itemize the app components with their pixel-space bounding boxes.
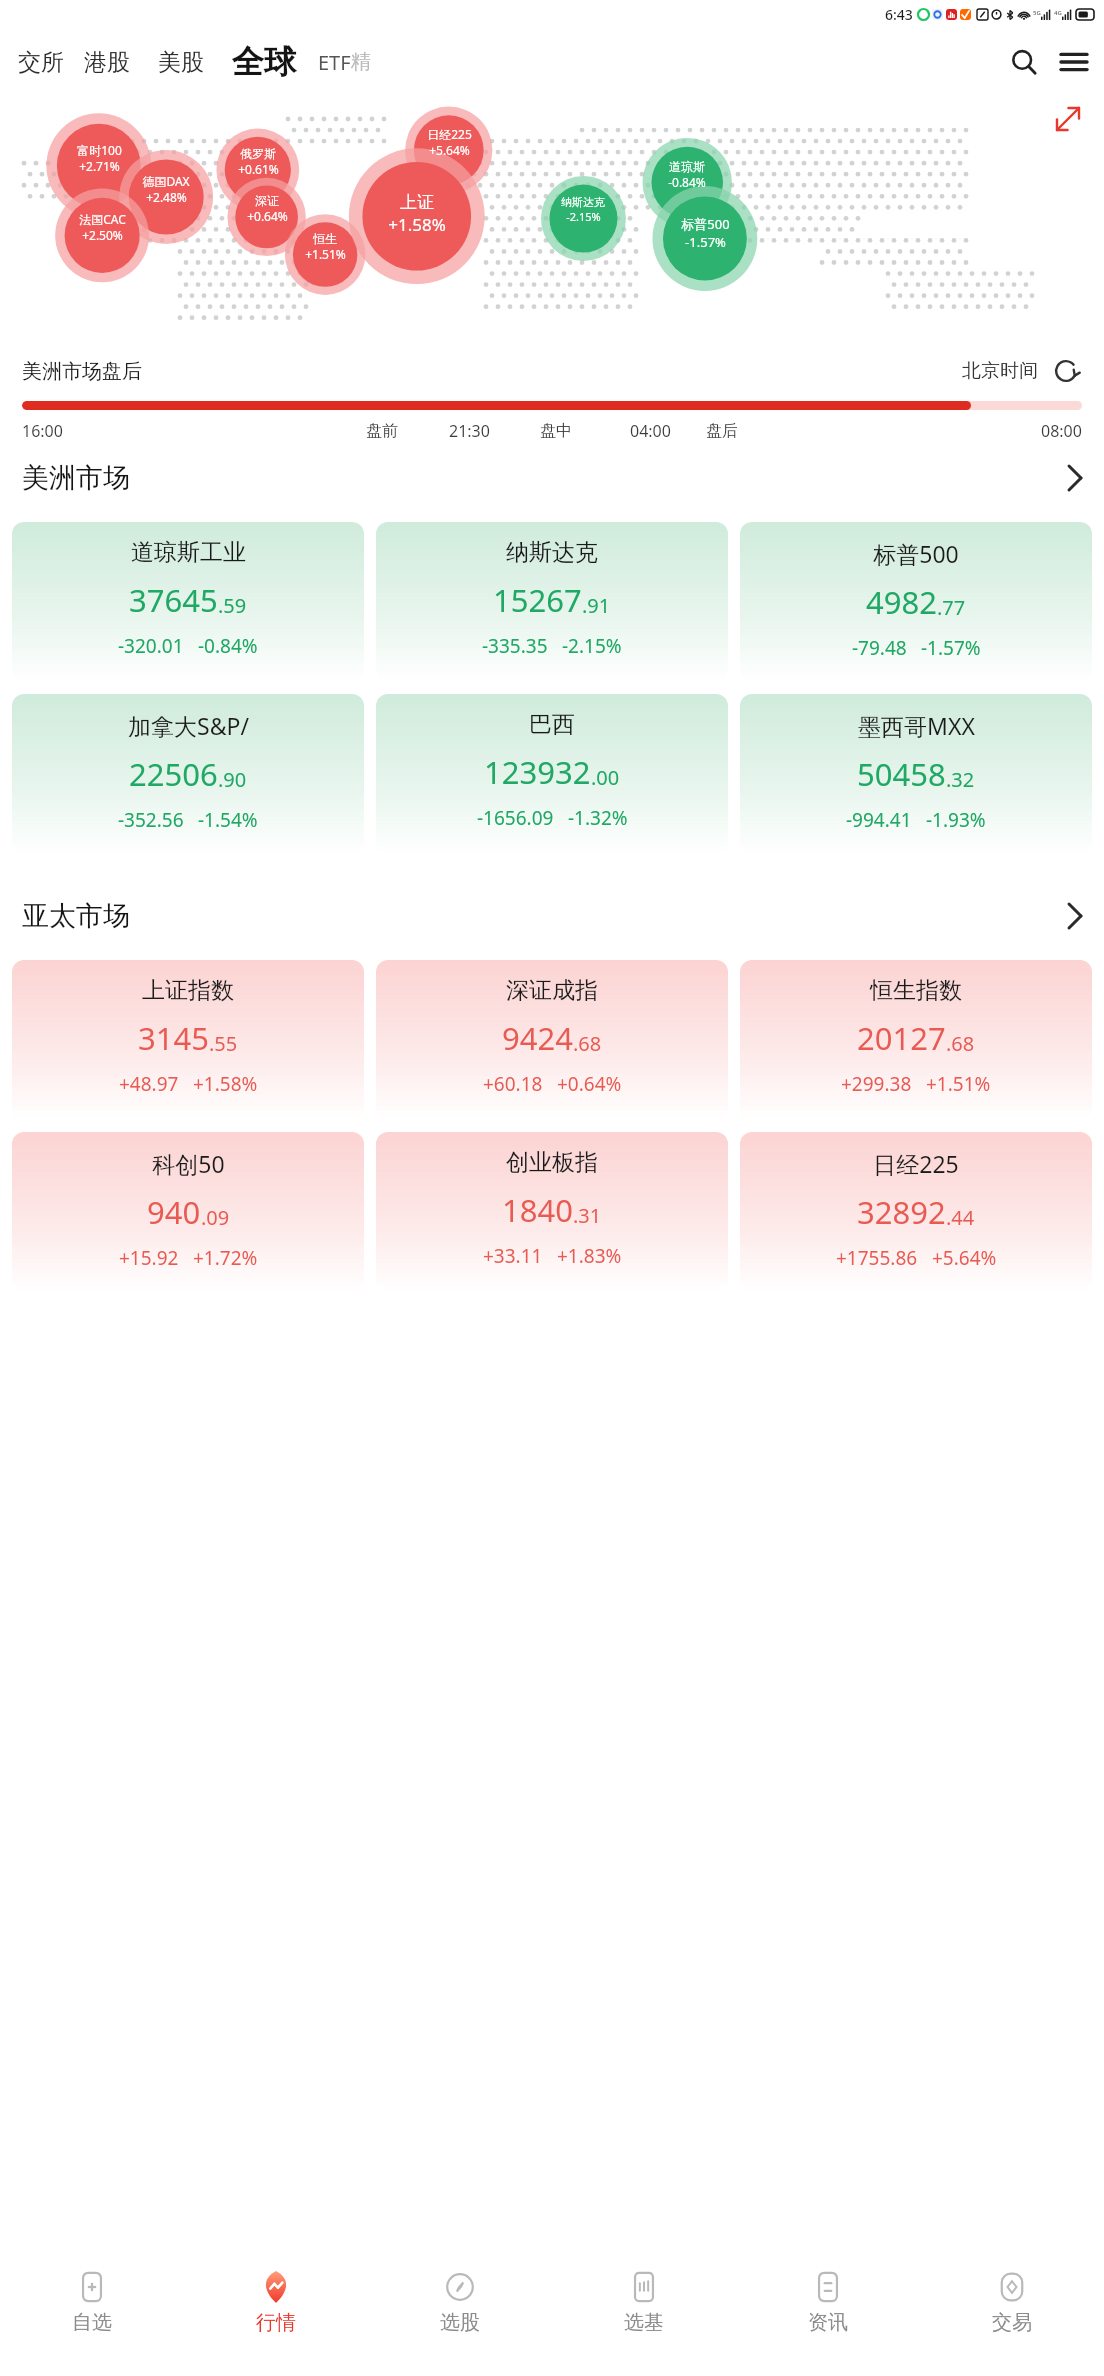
button[interactable]: 交易 xyxy=(920,2268,1104,2376)
staticText: 巴西 xyxy=(529,710,575,739)
button[interactable]: 纳斯达克 xyxy=(376,522,728,682)
button[interactable]: 选基 xyxy=(552,2268,736,2376)
button[interactable]: 俄罗斯 xyxy=(198,146,318,177)
staticText: 16:00 xyxy=(22,420,63,442)
button[interactable]: 恒生指数 xyxy=(740,960,1092,1120)
staticText: -1.57% xyxy=(921,635,981,661)
staticText: 4G xyxy=(1054,9,1062,17)
button[interactable]: 道琼斯 xyxy=(627,159,747,190)
staticText: -320.01 xyxy=(118,633,184,659)
button[interactable]: 标普500 xyxy=(645,215,765,251)
button[interactable]: 亚太市场 xyxy=(0,880,1104,952)
staticText: 37645 xyxy=(129,579,218,621)
button[interactable]: 深证 xyxy=(207,193,327,224)
staticText: +1.58% xyxy=(193,1071,258,1097)
staticText: 资讯 xyxy=(808,2310,848,2335)
staticText: 自选 xyxy=(72,2310,112,2335)
button[interactable]: 创业板指 xyxy=(376,1132,728,1292)
staticText: -1.54% xyxy=(198,807,258,833)
button[interactable]: Refresh xyxy=(1050,355,1082,387)
staticText: -1.57% xyxy=(685,233,726,251)
staticText: 道琼斯 xyxy=(669,159,705,174)
staticText: 5G xyxy=(1033,9,1041,17)
staticText: 日经225 xyxy=(873,1148,959,1179)
staticText: 深证成指 xyxy=(506,976,598,1005)
staticText: 标普500 xyxy=(681,215,730,233)
button[interactable]: 标普500 xyxy=(740,522,1092,682)
button[interactable]: 墨西哥MXX xyxy=(740,694,1092,854)
staticText: 123932 xyxy=(484,751,591,793)
staticText: 港股 xyxy=(84,48,130,77)
button[interactable]: 全球 xyxy=(218,42,310,82)
button[interactable]: 自选 xyxy=(0,2268,184,2376)
staticText: 9424 xyxy=(502,1017,573,1059)
staticText: -0.84% xyxy=(668,174,706,190)
staticText: 亚太市场 xyxy=(22,899,130,933)
button[interactable]: 深证成指 xyxy=(376,960,728,1120)
staticText: 科创50 xyxy=(152,1148,225,1179)
staticText: .09 xyxy=(201,1204,230,1231)
button[interactable]: 纳斯达克 xyxy=(523,195,643,224)
staticText: -79.48 xyxy=(852,635,907,661)
button[interactable]: 美股 xyxy=(144,48,218,77)
staticText: +299.38 xyxy=(841,1071,912,1097)
staticText: 盘后 xyxy=(706,421,738,441)
staticText: +2.48% xyxy=(146,189,187,205)
button[interactable]: 交所 xyxy=(12,48,70,77)
button[interactable]: 法国CAC xyxy=(42,211,162,243)
button[interactable]: 巴西 xyxy=(376,694,728,854)
staticText: +60.18 xyxy=(483,1071,543,1097)
button[interactable]: Search xyxy=(1000,38,1048,86)
button[interactable]: 资讯 xyxy=(736,2268,920,2376)
staticText: .55 xyxy=(209,1030,238,1057)
staticText: .31 xyxy=(573,1202,602,1229)
button[interactable]: 上证指数 xyxy=(12,960,364,1120)
staticText: 德国DAX xyxy=(142,173,190,189)
button[interactable]: 科创50 xyxy=(12,1132,364,1292)
staticText: +5.64% xyxy=(932,1245,997,1271)
button[interactable]: 恒生 xyxy=(265,231,385,262)
staticText: 20127 xyxy=(857,1017,946,1059)
button[interactable]: 美洲市场 xyxy=(0,442,1104,514)
button[interactable]: 上证 xyxy=(357,192,477,236)
staticText: 加拿大S&P/ xyxy=(128,710,249,741)
button[interactable]: Expand xyxy=(1050,101,1086,137)
staticText: +5.64% xyxy=(429,142,470,158)
button[interactable]: 日经225 xyxy=(740,1132,1092,1292)
button[interactable]: 富时100 xyxy=(39,142,159,174)
staticText: +15.92 xyxy=(119,1245,179,1271)
staticText: 08:00 xyxy=(1041,420,1082,442)
staticText: -1.93% xyxy=(926,807,986,833)
button[interactable]: 加拿大S&P/ xyxy=(12,694,364,854)
staticText: 俄罗斯 xyxy=(240,146,276,161)
staticText: 04:00 xyxy=(630,420,671,442)
staticText: 日经225 xyxy=(427,126,472,142)
button[interactable]: 日经225 xyxy=(389,126,509,158)
staticText: -994.41 xyxy=(846,807,912,833)
staticText: -0.84% xyxy=(198,633,258,659)
staticText: 美洲市场 xyxy=(22,461,130,495)
staticText: 选基 xyxy=(624,2310,664,2335)
staticText: 1840 xyxy=(502,1189,573,1231)
button[interactable]: ETF xyxy=(310,49,379,76)
staticText: 交易 xyxy=(992,2310,1032,2335)
staticText: 纳斯达克 xyxy=(506,538,598,567)
staticText: -352.56 xyxy=(118,807,184,833)
button[interactable]: Menu xyxy=(1048,36,1100,88)
button[interactable]: 德国DAX xyxy=(106,173,226,205)
button[interactable]: 港股 xyxy=(70,48,144,77)
button[interactable]: 道琼斯工业 xyxy=(12,522,364,682)
staticText: 富时100 xyxy=(77,142,122,158)
staticText: 3145 xyxy=(138,1017,209,1059)
staticText: +1.58% xyxy=(388,213,446,236)
staticText: .77 xyxy=(937,594,966,621)
staticText: 32892 xyxy=(857,1191,946,1233)
button[interactable]: 行情 xyxy=(184,2268,368,2376)
staticText: 道琼斯工业 xyxy=(131,538,246,567)
staticText: 50458 xyxy=(857,753,946,795)
button[interactable]: 选股 xyxy=(368,2268,552,2376)
staticText: .00 xyxy=(591,764,620,791)
staticText: .44 xyxy=(946,1204,975,1231)
staticText: +0.64% xyxy=(247,208,288,224)
staticText: 标普500 xyxy=(873,538,959,569)
